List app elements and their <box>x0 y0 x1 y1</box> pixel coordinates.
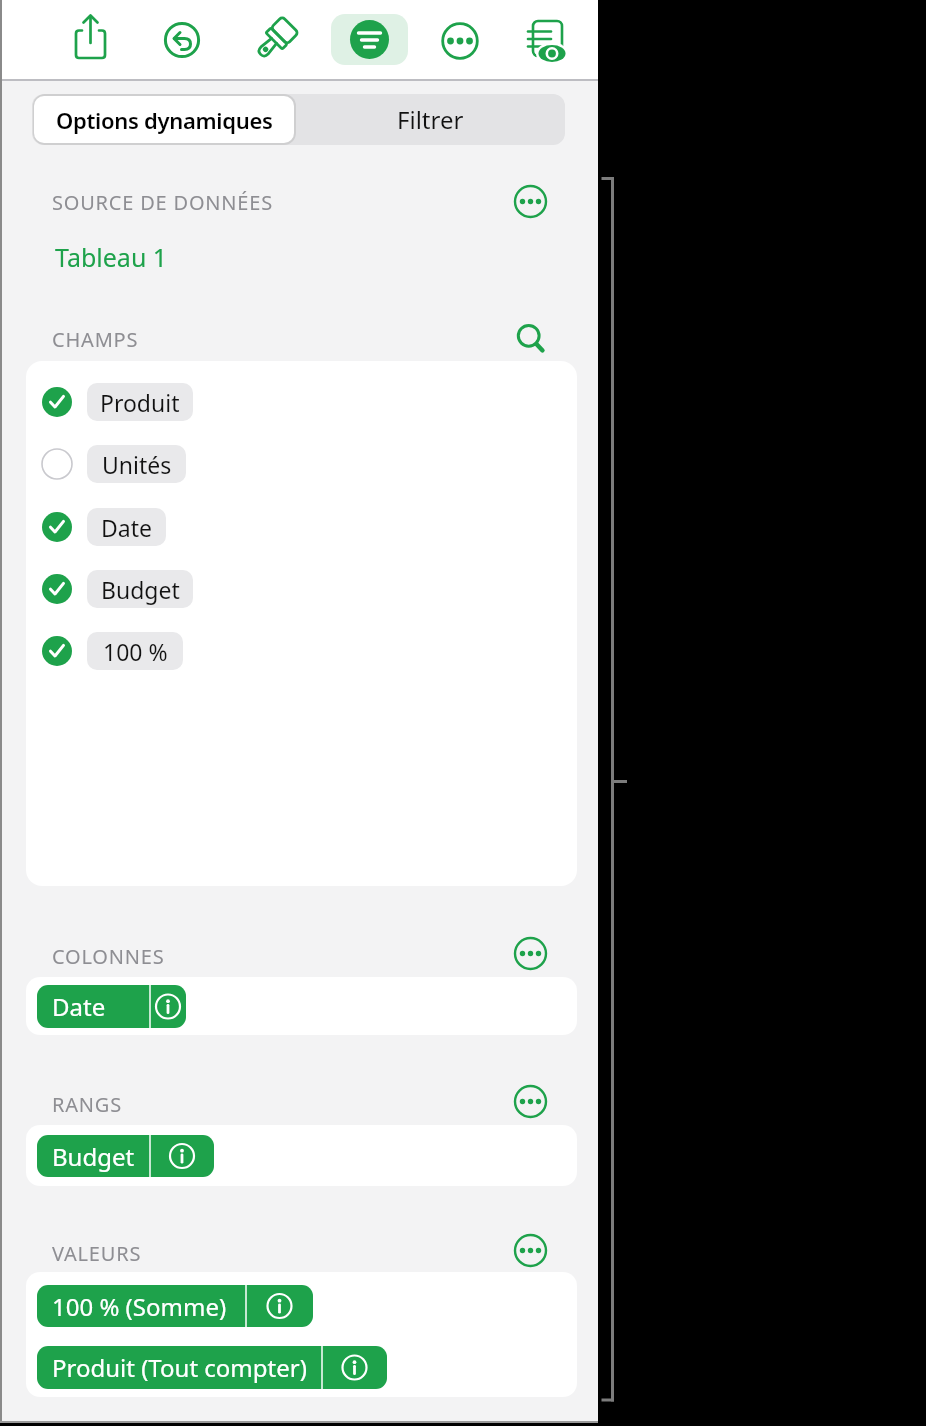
staticText: Filtrer <box>397 103 464 136</box>
button[interactable] <box>512 320 548 356</box>
staticText: VALEURS <box>52 1240 142 1262</box>
button[interactable]: Date <box>37 985 186 1028</box>
button[interactable]: Options dynamiques <box>34 96 294 143</box>
staticText: RANGS <box>52 1091 122 1113</box>
staticText: Produit (Tout compter) <box>52 1351 307 1384</box>
staticText: Date <box>101 512 152 543</box>
button[interactable]: Budget <box>87 570 193 608</box>
button[interactable] <box>40 572 74 606</box>
staticText: Date <box>52 990 106 1023</box>
button[interactable]: Date <box>87 508 166 546</box>
button[interactable]: Unités <box>87 445 186 483</box>
staticText: Produit <box>100 387 180 418</box>
button[interactable] <box>249 16 297 68</box>
button[interactable] <box>511 1082 550 1121</box>
button[interactable] <box>524 14 574 66</box>
staticText: Options dynamiques <box>56 105 273 135</box>
button[interactable] <box>40 385 74 419</box>
button[interactable] <box>441 22 479 60</box>
button[interactable]: 100 % (Somme) <box>37 1285 313 1327</box>
button[interactable]: Produit (Tout compter) <box>37 1346 387 1389</box>
button[interactable]: Tableau 1 <box>55 240 215 274</box>
button[interactable] <box>40 634 74 668</box>
button[interactable]: Budget <box>37 1135 214 1177</box>
button[interactable] <box>511 182 550 221</box>
staticText: Unités <box>102 449 172 480</box>
staticText: 100 % (Somme) <box>52 1290 227 1323</box>
staticText: Budget <box>101 574 180 605</box>
button[interactable] <box>40 447 74 481</box>
staticText: SOURCE DE DONNÉES <box>52 189 273 213</box>
staticText: Tableau 1 <box>55 240 168 274</box>
button[interactable] <box>331 14 408 65</box>
staticText: COLONNES <box>52 943 165 965</box>
button[interactable] <box>511 934 550 973</box>
button[interactable] <box>163 21 201 59</box>
button[interactable]: Produit <box>87 383 193 421</box>
staticText: Budget <box>52 1140 135 1173</box>
button[interactable] <box>511 1231 550 1270</box>
button[interactable] <box>68 10 113 66</box>
button[interactable]: 100 % <box>87 632 183 670</box>
button[interactable]: Filtrer <box>295 94 565 145</box>
staticText: 100 % <box>103 636 168 667</box>
staticText: CHAMPS <box>52 326 139 350</box>
button[interactable] <box>40 510 74 544</box>
